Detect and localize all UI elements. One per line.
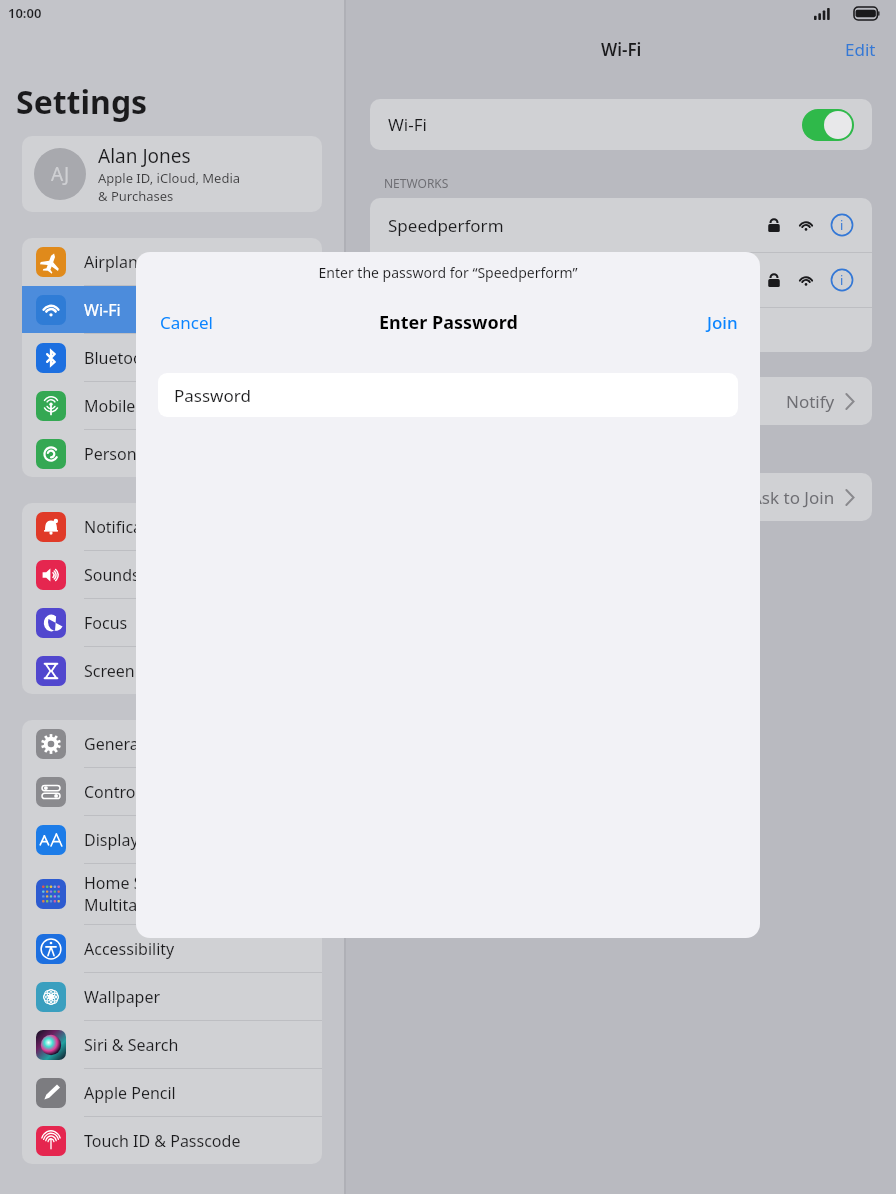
other: Signal strength: [796, 270, 816, 290]
button[interactable]: Bluetooth: [22, 334, 322, 381]
staticText: Control Centre: [84, 781, 194, 803]
staticText: Cancel: [160, 311, 213, 334]
button[interactable]: AJ: [22, 136, 322, 212]
staticText: i: [840, 271, 844, 289]
button[interactable]: Airplane Mode: [22, 238, 322, 285]
button[interactable]: Siri & Search: [22, 1021, 322, 1068]
staticText: Enter Password: [379, 310, 518, 335]
staticText: Speedperform: [388, 214, 504, 237]
staticText: 10:00: [8, 4, 42, 22]
staticText: Edit: [845, 38, 876, 61]
staticText: Accessibility: [84, 938, 175, 960]
staticText: Wi-Fi: [84, 299, 121, 321]
staticText: Wi-Fi: [388, 113, 427, 136]
button[interactable]: Cancel: [136, 305, 237, 340]
staticText: General: [84, 733, 143, 755]
staticText: Mobile Data: [84, 395, 175, 417]
button[interactable]: Mobile Data: [22, 382, 322, 429]
staticText: Notify: [786, 390, 835, 413]
staticText: Notifications: [84, 516, 180, 538]
button[interactable]: Wi-Fi: [370, 99, 872, 150]
button[interactable]: Wi-Fi: [22, 286, 322, 333]
staticText: i: [840, 216, 844, 234]
other: Signal strength: [796, 215, 816, 235]
button[interactable]: Home Screen & Multitasking: [22, 864, 322, 924]
staticText: Apple ID, iCloud, Media: [98, 169, 241, 187]
staticText: Siri & Search: [84, 1034, 179, 1056]
button[interactable]: Ask to Join: [370, 473, 872, 521]
button[interactable]: Join: [685, 305, 760, 340]
staticText: Enter the password for “Speedperform”: [136, 263, 760, 282]
button[interactable]: Edit: [825, 30, 896, 69]
button[interactable]: General: [22, 720, 322, 767]
staticText: Sounds: [84, 564, 140, 586]
button[interactable]: Notifications: [22, 503, 322, 550]
button[interactable]: More info: [830, 268, 854, 292]
button[interactable]: Focus: [22, 599, 322, 646]
staticText: & Purchases: [98, 187, 174, 205]
staticText: Join: [707, 311, 738, 334]
staticText: Wi-Fi: [601, 38, 642, 61]
staticText: Display & Brightness: [84, 829, 240, 851]
button[interactable]: Display & Brightness: [22, 816, 322, 863]
button[interactable]: Secured: [370, 253, 872, 307]
staticText: Personal Hotspot: [84, 443, 215, 465]
staticText: Wallpaper: [84, 986, 161, 1008]
button[interactable]: More info: [830, 213, 854, 237]
staticText: AJ: [51, 161, 70, 187]
staticText: Bluetooth: [84, 347, 159, 369]
other: Secured: [766, 272, 782, 288]
staticText: Apple Pencil: [84, 1082, 176, 1104]
button[interactable]: Speedperform: [370, 198, 872, 252]
staticText: Settings: [16, 80, 148, 124]
button[interactable]: Notify: [370, 377, 872, 425]
staticText: Password: [174, 384, 251, 407]
staticText: NETWORKS: [384, 175, 449, 191]
staticText: Touch ID & Passcode: [84, 1130, 241, 1152]
button[interactable]: Personal Hotspot: [22, 430, 322, 477]
staticText: Focus: [84, 612, 128, 634]
button[interactable]: Password: [158, 373, 738, 417]
button[interactable]: Wallpaper: [22, 973, 322, 1020]
button[interactable]: [370, 308, 872, 352]
staticText: Alan Jones: [98, 143, 191, 169]
staticText: Screen Time: [84, 660, 176, 682]
button[interactable]: Touch ID & Passcode: [22, 1117, 322, 1164]
button[interactable]: Sounds: [22, 551, 322, 598]
button[interactable]: Control Centre: [22, 768, 322, 815]
staticText: Ask to Join: [751, 486, 835, 509]
button[interactable]: Accessibility: [22, 925, 322, 972]
staticText: Airplane Mode: [84, 251, 195, 273]
button[interactable]: Apple Pencil: [22, 1069, 322, 1116]
other: Secured: [766, 217, 782, 233]
staticText: Home Screen & Multitasking: [84, 872, 201, 916]
button[interactable]: Screen Time: [22, 647, 322, 694]
